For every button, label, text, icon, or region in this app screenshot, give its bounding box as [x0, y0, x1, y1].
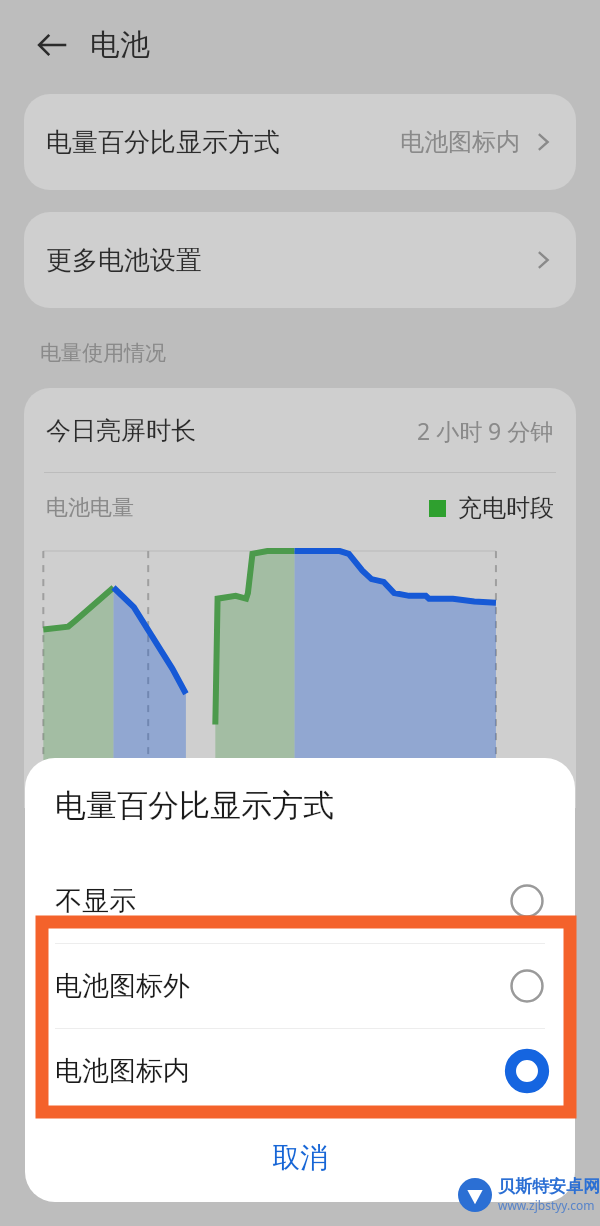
- staticText: 电池图标内: [55, 1054, 190, 1088]
- staticText: www.zjbstyy.com: [498, 1197, 595, 1213]
- button[interactable]: 电量百分比显示方式: [24, 94, 576, 190]
- staticText: 取消: [272, 1140, 328, 1175]
- staticText: 2 小时 9 分钟: [417, 415, 554, 446]
- staticText: 今日亮屏时长: [46, 415, 196, 446]
- staticText: 电池图标内: [400, 127, 520, 157]
- button[interactable]: Back: [28, 21, 76, 69]
- staticText: 电量使用情况: [40, 340, 166, 366]
- staticText: 充电时段: [458, 493, 554, 523]
- button[interactable]: 电池图标外: [25, 944, 575, 1028]
- staticText: 电池图标外: [55, 969, 190, 1003]
- staticText: 贝斯特安卓网: [498, 1176, 600, 1197]
- staticText: 电量百分比显示方式: [55, 786, 334, 825]
- button[interactable]: 取消: [25, 1121, 575, 1193]
- staticText: 电池: [90, 26, 150, 64]
- button[interactable]: 今日亮屏时长: [24, 388, 576, 472]
- button[interactable]: 不显示: [25, 859, 575, 943]
- button[interactable]: 更多电池设置: [24, 212, 576, 308]
- staticText: 更多电池设置: [46, 244, 202, 277]
- staticText: 电量百分比显示方式: [46, 126, 280, 159]
- staticText: 不显示: [55, 884, 136, 918]
- staticText: 电池电量: [46, 494, 134, 522]
- button[interactable]: 电池图标内: [25, 1029, 575, 1113]
